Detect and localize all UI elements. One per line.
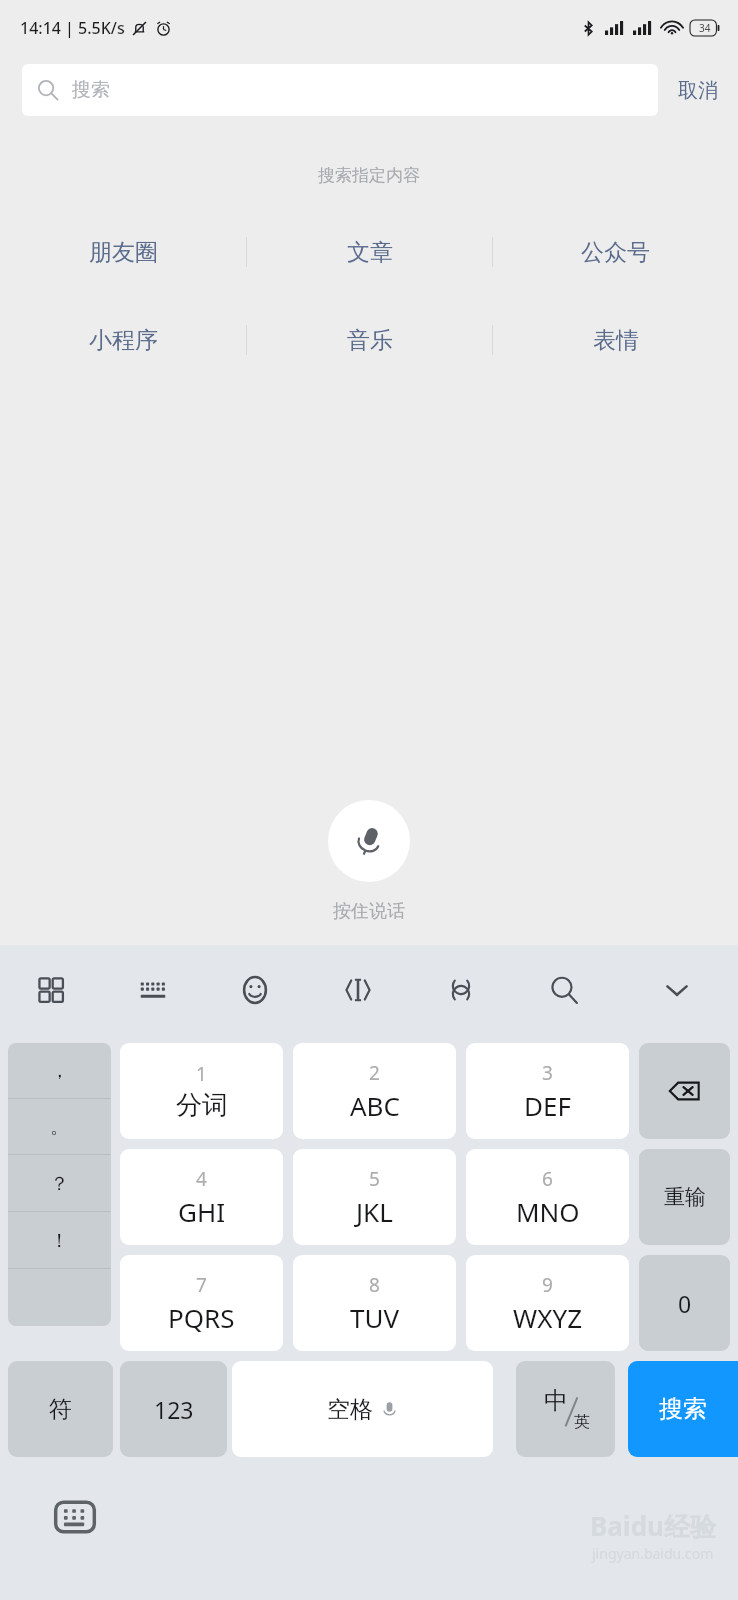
button[interactable]: Search (512, 945, 615, 1035)
staticText: 按住说话 (333, 900, 405, 923)
button[interactable]: 123 (120, 1361, 227, 1457)
staticText: 表情 (593, 326, 639, 355)
button[interactable]: ？ (8, 1155, 111, 1212)
staticText: 4 (196, 1166, 207, 1192)
button[interactable]: 取消 (658, 55, 738, 125)
staticText: 重输 (664, 1184, 706, 1210)
button[interactable]: Emoji (204, 945, 306, 1035)
button[interactable]: ！ (8, 1212, 111, 1269)
staticText: 中 (544, 1386, 568, 1416)
staticText: 符 (49, 1395, 72, 1424)
button[interactable]: 2 (293, 1043, 456, 1139)
staticText: 14:14 | 5.5K/s (20, 17, 125, 39)
staticText: 5 (369, 1166, 380, 1192)
button[interactable]: 7 (120, 1255, 283, 1351)
staticText: 。 (50, 1115, 69, 1139)
staticText: jingyan.baidu.com (592, 1544, 714, 1563)
staticText: 取消 (678, 78, 718, 103)
staticText: ？ (50, 1172, 69, 1196)
staticText: 空格 (327, 1395, 373, 1424)
button[interactable]: Hide keyboard (615, 945, 738, 1035)
staticText: 3 (542, 1060, 553, 1086)
staticText: MNO (516, 1194, 580, 1229)
button[interactable]: 8 (293, 1255, 456, 1351)
staticText: 英 (574, 1412, 590, 1432)
button[interactable]: 文章 (247, 230, 492, 274)
button[interactable]: 0 (639, 1255, 730, 1351)
button[interactable]: 中 (516, 1361, 615, 1457)
button[interactable]: Apps (0, 945, 102, 1035)
staticText: 分词 (176, 1089, 228, 1122)
staticText: GHI (178, 1194, 226, 1229)
button[interactable]: 空格 (232, 1361, 493, 1457)
button[interactable]: 重输 (639, 1149, 730, 1245)
button[interactable]: Clipboard (409, 945, 512, 1035)
button[interactable]: 音乐 (247, 318, 492, 362)
staticText: 8 (369, 1272, 380, 1298)
button[interactable]: 搜索 (628, 1361, 738, 1457)
button[interactable]: 朋友圈 (0, 230, 246, 274)
button[interactable]: 1 (120, 1043, 283, 1139)
button[interactable]: 小程序 (0, 318, 246, 362)
staticText: TUV (350, 1300, 400, 1335)
staticText: 搜索指定内容 (0, 165, 738, 186)
staticText: 123 (154, 1394, 194, 1425)
button[interactable]: 符 (8, 1361, 113, 1457)
button[interactable]: Edit (306, 945, 409, 1035)
button[interactable]: 9 (466, 1255, 629, 1351)
staticText: 搜索 (72, 78, 110, 102)
staticText: ， (50, 1059, 69, 1083)
staticText: ！ (50, 1229, 69, 1253)
staticText: DEF (524, 1088, 571, 1123)
button[interactable]: Switch keyboard (52, 1494, 98, 1540)
staticText: Baidu经验 (590, 1508, 716, 1544)
staticText: 34 (699, 21, 711, 35)
staticText: JKL (356, 1194, 393, 1229)
button[interactable]: 公众号 (493, 230, 738, 274)
staticText: 2 (369, 1060, 380, 1086)
staticText: 0 (678, 1288, 692, 1319)
staticText: WXYZ (513, 1300, 583, 1335)
staticText: 朋友圈 (89, 238, 158, 267)
staticText: 6 (542, 1166, 553, 1192)
button[interactable]: ， (8, 1043, 111, 1099)
staticText: 1 (196, 1061, 207, 1087)
staticText: 9 (542, 1272, 553, 1298)
button[interactable]: Hold to talk (328, 800, 410, 882)
staticText: 搜索 (659, 1394, 707, 1424)
button[interactable]: 5 (293, 1149, 456, 1245)
button[interactable]: 3 (466, 1043, 629, 1139)
staticText: 小程序 (89, 326, 158, 355)
staticText: 7 (196, 1272, 207, 1298)
button[interactable]: 。 (8, 1099, 111, 1155)
staticText: 文章 (347, 238, 393, 267)
button[interactable]: Keyboard layout (102, 945, 204, 1035)
button[interactable]: 表情 (493, 318, 738, 362)
staticText: PQRS (168, 1300, 235, 1335)
button[interactable]: 搜索 (22, 64, 658, 116)
button[interactable]: 6 (466, 1149, 629, 1245)
staticText: 音乐 (347, 326, 393, 355)
staticText: 公众号 (581, 238, 650, 267)
staticText: ABC (350, 1088, 400, 1123)
button[interactable]: Delete (639, 1043, 730, 1139)
button[interactable]: 4 (120, 1149, 283, 1245)
